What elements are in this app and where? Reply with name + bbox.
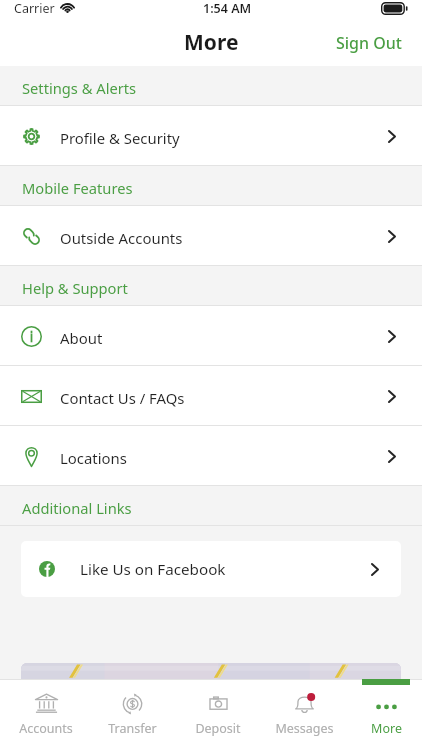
staticText: Contact Us / FAQs xyxy=(60,388,185,408)
button[interactable]: Contact Us / FAQs xyxy=(0,366,422,426)
staticText: More xyxy=(371,720,402,737)
button[interactable]: About xyxy=(0,306,422,366)
button[interactable]: Like Us on Facebook xyxy=(21,541,401,597)
staticText: Carrier xyxy=(14,0,55,17)
button[interactable]: More xyxy=(347,679,422,750)
staticText: Transfer xyxy=(108,720,157,737)
button[interactable] xyxy=(21,663,401,679)
button[interactable]: Outside Accounts xyxy=(0,206,422,266)
button[interactable]: Accounts xyxy=(3,679,89,750)
button[interactable]: Messages xyxy=(261,679,347,750)
staticText: 1:54 AM xyxy=(203,0,252,17)
staticText: Like Us on Facebook xyxy=(80,559,226,580)
staticText: Additional Links xyxy=(22,498,132,518)
staticText: More xyxy=(184,28,239,57)
staticText: About xyxy=(60,328,103,348)
staticText: Accounts xyxy=(19,720,73,737)
staticText: Help & Support xyxy=(22,278,128,298)
button[interactable]: Sign Out xyxy=(318,27,422,65)
staticText: Mobile Features xyxy=(22,178,133,198)
staticText: Outside Accounts xyxy=(60,228,183,248)
button[interactable]: Deposit xyxy=(175,679,261,750)
staticText: Locations xyxy=(60,448,127,468)
staticText: Deposit xyxy=(195,720,241,737)
staticText: Profile & Security xyxy=(60,128,180,148)
staticText: Sign Out xyxy=(336,32,402,54)
button[interactable]: Locations xyxy=(0,426,422,486)
staticText: Settings & Alerts xyxy=(22,78,137,98)
staticText: Messages xyxy=(275,720,334,737)
button[interactable]: Transfer xyxy=(89,679,175,750)
button[interactable]: Profile & Security xyxy=(0,106,422,166)
